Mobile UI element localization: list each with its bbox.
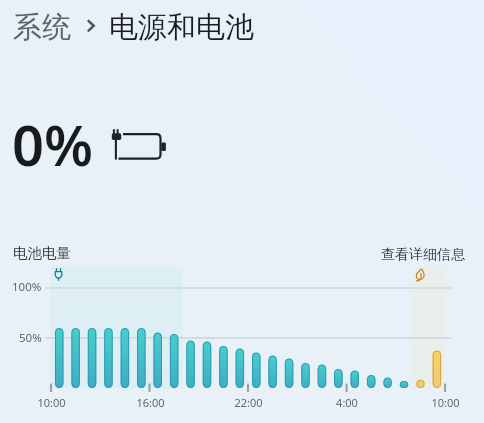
staticText: 查看详细信息: [381, 246, 465, 264]
staticText: 10:00: [431, 395, 460, 410]
button[interactable]: 系统: [13, 9, 71, 46]
staticText: 电池电量: [13, 244, 71, 262]
staticText: 22:00: [234, 395, 263, 410]
staticText: 16:00: [136, 395, 165, 410]
staticText: 0%: [12, 106, 94, 182]
other: Breadcrumb separator: [71, 11, 109, 45]
button[interactable]: 查看详细信息: [381, 246, 465, 264]
staticText: 10:00: [37, 395, 66, 410]
staticText: 100%: [12, 279, 42, 295]
staticText: 50%: [19, 330, 42, 346]
other: Battery charging: [108, 124, 170, 166]
staticText: 4:00: [336, 395, 358, 410]
staticText: 电源和电池: [109, 9, 254, 46]
